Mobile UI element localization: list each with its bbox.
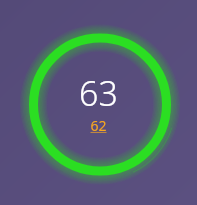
button[interactable]: 63 xyxy=(79,70,118,135)
button[interactable]: Heart rate 63 xyxy=(0,0,197,205)
staticText: 63 xyxy=(79,70,118,116)
staticText: 62 xyxy=(90,116,107,135)
